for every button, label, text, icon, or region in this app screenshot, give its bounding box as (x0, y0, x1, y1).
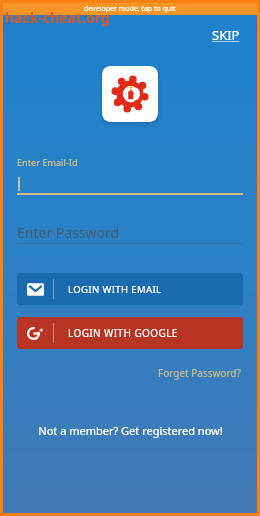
button[interactable]: Google (17, 317, 243, 349)
button[interactable]: Email (17, 273, 243, 305)
staticText: Forget Password? (158, 366, 241, 380)
staticText: Enter Password (17, 223, 120, 242)
button[interactable]: Enter Password (17, 220, 243, 244)
button[interactable] (17, 175, 243, 195)
staticText: LOGIN WITH EMAIL (68, 283, 162, 296)
button[interactable]: Forget Password? (155, 363, 244, 383)
staticText: Not a member? Get registered now! (38, 423, 223, 438)
staticText: developer mode, tap to quit (84, 4, 176, 14)
staticText: SKIP (212, 26, 240, 44)
other: Google (27, 325, 44, 342)
staticText: hack-cheat.org (5, 8, 110, 27)
other: Email (27, 281, 44, 298)
button[interactable]: Not a member? Get registered now! (34, 419, 227, 442)
staticText: Enter Email-Id (17, 156, 78, 168)
staticText: LOGIN WITH GOOGLE (68, 326, 178, 340)
button[interactable]: developer mode, tap to quit (3, 3, 257, 15)
button[interactable]: SKIP (208, 24, 244, 46)
